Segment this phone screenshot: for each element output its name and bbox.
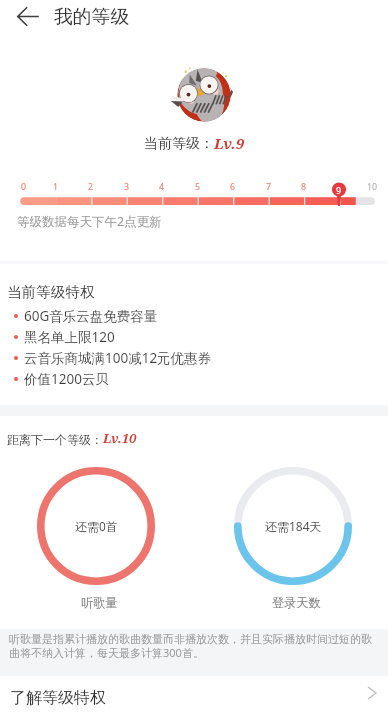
staticText: 9 [336,184,342,196]
staticText: 等级数据每天下午2点更新 [17,213,162,230]
staticText: 0 [21,181,27,193]
staticText: 8 [301,181,307,193]
button[interactable]: Back [10,0,44,33]
staticText: 当前等级： [144,135,214,153]
button[interactable]: 价值1200云贝 [0,369,388,389]
staticText: 距离下一个等级： [7,432,103,447]
staticText: 9 [336,181,342,193]
staticText: 5 [195,181,201,193]
staticText: 黑名单上限120 [24,328,115,346]
staticText: 10 [367,181,378,193]
staticText: 云音乐商城满100减12元优惠券 [24,349,212,367]
button[interactable]: 了解等级特权 [0,676,388,717]
staticText: 1 [53,181,59,193]
staticText: 4 [159,181,165,193]
staticText: 7 [266,181,272,193]
staticText: 当前等级特权 [7,283,95,301]
staticText: 60G音乐云盘免费容量 [24,307,158,325]
staticText: 3 [124,181,130,193]
staticText: 听歌量 [81,595,118,610]
button[interactable]: 60G音乐云盘免费容量 [0,306,388,326]
staticText: 价值1200云贝 [24,370,109,388]
staticText: Lv.9 [214,133,245,153]
staticText: 6 [230,181,236,193]
staticText: 登录天数 [272,595,321,610]
staticText: Lv.10 [103,429,137,447]
staticText: 还需0首 [75,518,118,534]
staticText: 了解等级特权 [10,688,106,708]
button[interactable]: 黑名单上限120 [0,327,388,347]
staticText: 我的等级 [54,5,130,29]
staticText: 还需184天 [265,518,322,534]
staticText: 听歌量是指累计播放的歌曲数量而非播放次数，并且实际播放时间过短的歌曲将不纳入计算… [9,632,381,661]
staticText: 2 [88,181,94,193]
button[interactable]: 云音乐商城满100减12元优惠券 [0,348,388,368]
